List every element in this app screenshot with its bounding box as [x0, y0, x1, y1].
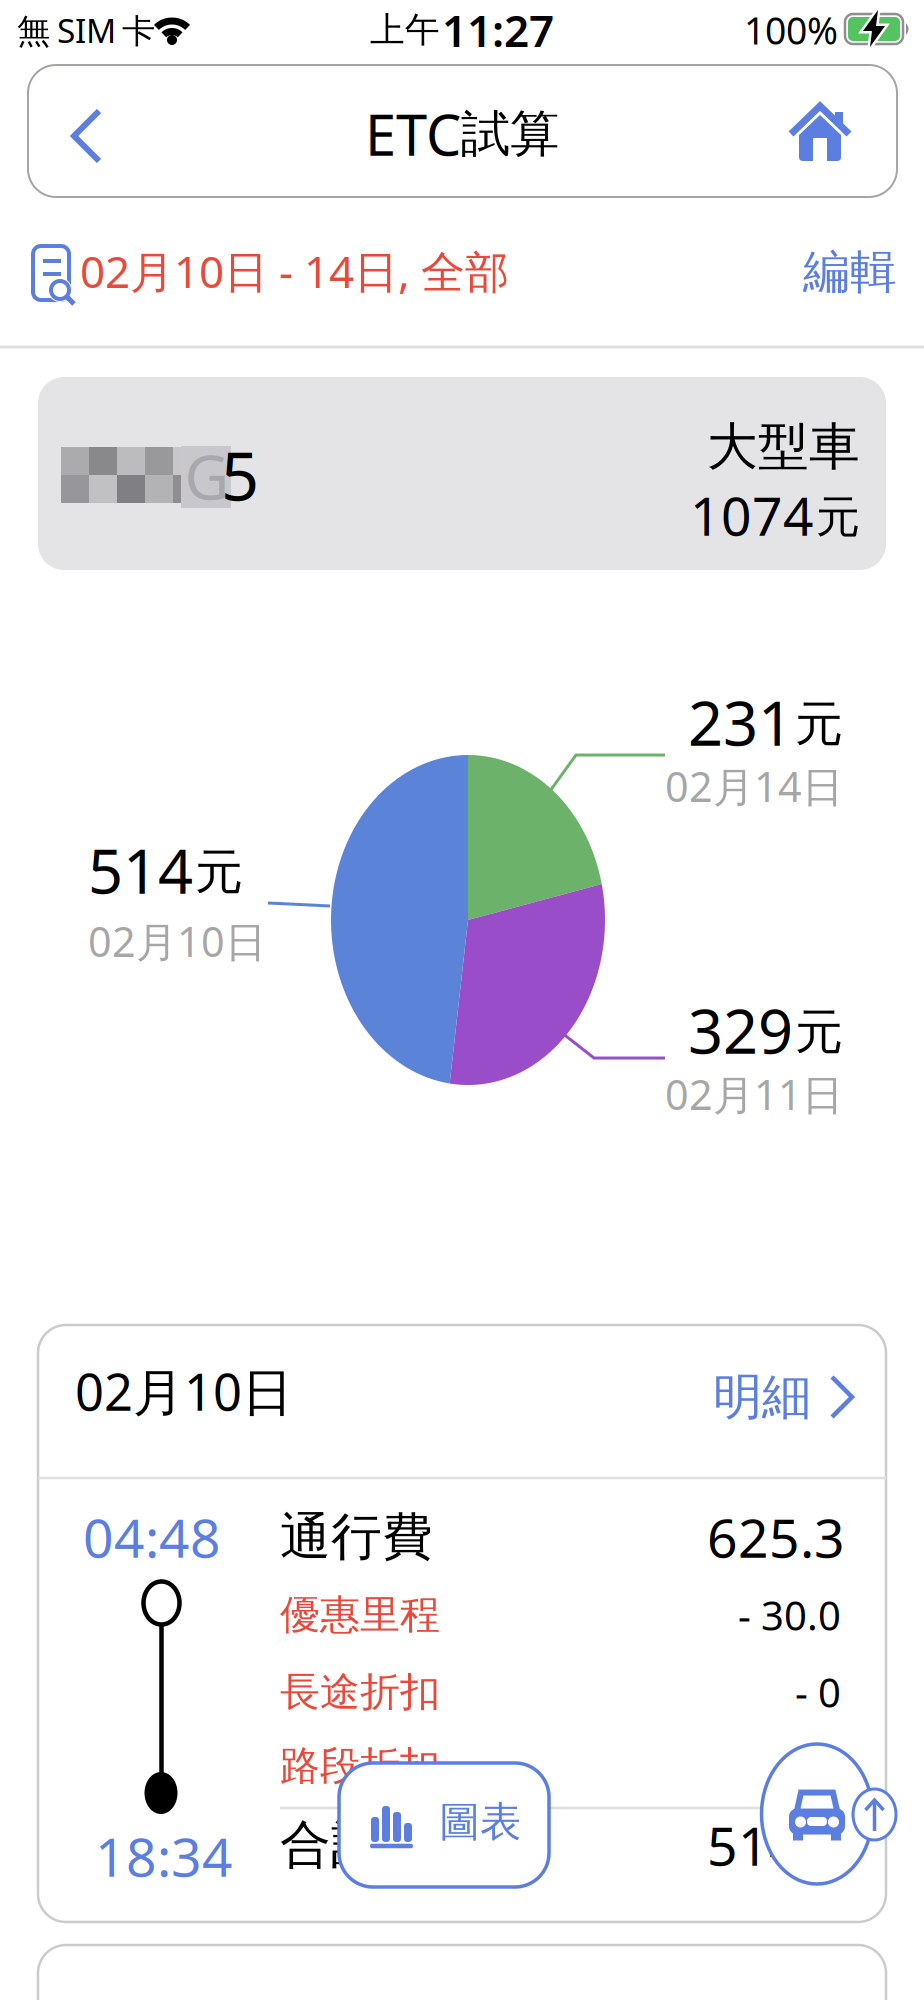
staticText: 無 SIM 卡 — [17, 8, 155, 52]
staticText: 路段折扣 — [280, 1741, 440, 1790]
staticText: 02月10日 — [75, 1357, 293, 1425]
staticText: - 0 — [795, 1665, 841, 1718]
staticText: 優惠里程 — [280, 1590, 440, 1639]
staticText: 231 — [688, 681, 793, 763]
button[interactable]: 返回 — [59, 96, 117, 178]
staticText: 大型車 — [707, 416, 860, 478]
staticText: G — [184, 435, 229, 517]
staticText: 長途折扣 — [280, 1667, 440, 1716]
staticText: ETC — [365, 97, 461, 171]
staticText: 02月10日 — [88, 914, 266, 968]
staticText: 編輯 — [803, 243, 897, 301]
staticText: 100% — [744, 5, 838, 55]
staticText: 514.3 — [707, 1810, 845, 1880]
button[interactable]: 首頁 — [788, 101, 852, 165]
staticText: 試算 — [461, 104, 559, 164]
staticText: 元 — [195, 842, 243, 901]
staticText: 5 — [221, 431, 259, 519]
staticText: 元 — [795, 694, 843, 753]
staticText: 通行費 — [280, 1506, 433, 1568]
button[interactable]: 車輛 — [759, 1741, 875, 1886]
staticText: 625.3 — [707, 1502, 845, 1572]
staticText: - 30.0 — [738, 1588, 841, 1641]
staticText: 元 — [816, 490, 860, 544]
staticText: 明細 — [713, 1367, 811, 1427]
staticText: 02月14日 — [665, 759, 843, 813]
staticText: 元 — [795, 1002, 843, 1061]
button[interactable]: 回到頂部 — [851, 1787, 898, 1842]
staticText: 圖表 — [439, 1797, 521, 1847]
staticText: 514 — [88, 829, 193, 911]
staticText: 02月10日 - 14日, 全部 — [80, 242, 509, 300]
staticText: 329 — [688, 989, 793, 1071]
staticText: 02月11日 — [665, 1067, 843, 1121]
button[interactable]: 編輯 — [697, 243, 897, 301]
staticText: 1074 — [690, 480, 814, 550]
button[interactable]: 圖表 — [339, 1763, 549, 1887]
staticText: 18:34 — [95, 1821, 233, 1891]
staticText: - 0 — [795, 1739, 841, 1792]
button[interactable]: 明細 — [716, 1371, 860, 1423]
button[interactable]: 02月10日 - 14日, 全部 — [28, 241, 648, 307]
staticText: 合計 — [280, 1814, 382, 1876]
staticText: 04:48 — [83, 1502, 221, 1572]
staticText: 上午 — [370, 9, 440, 51]
staticText: 11:27 — [442, 1, 554, 59]
